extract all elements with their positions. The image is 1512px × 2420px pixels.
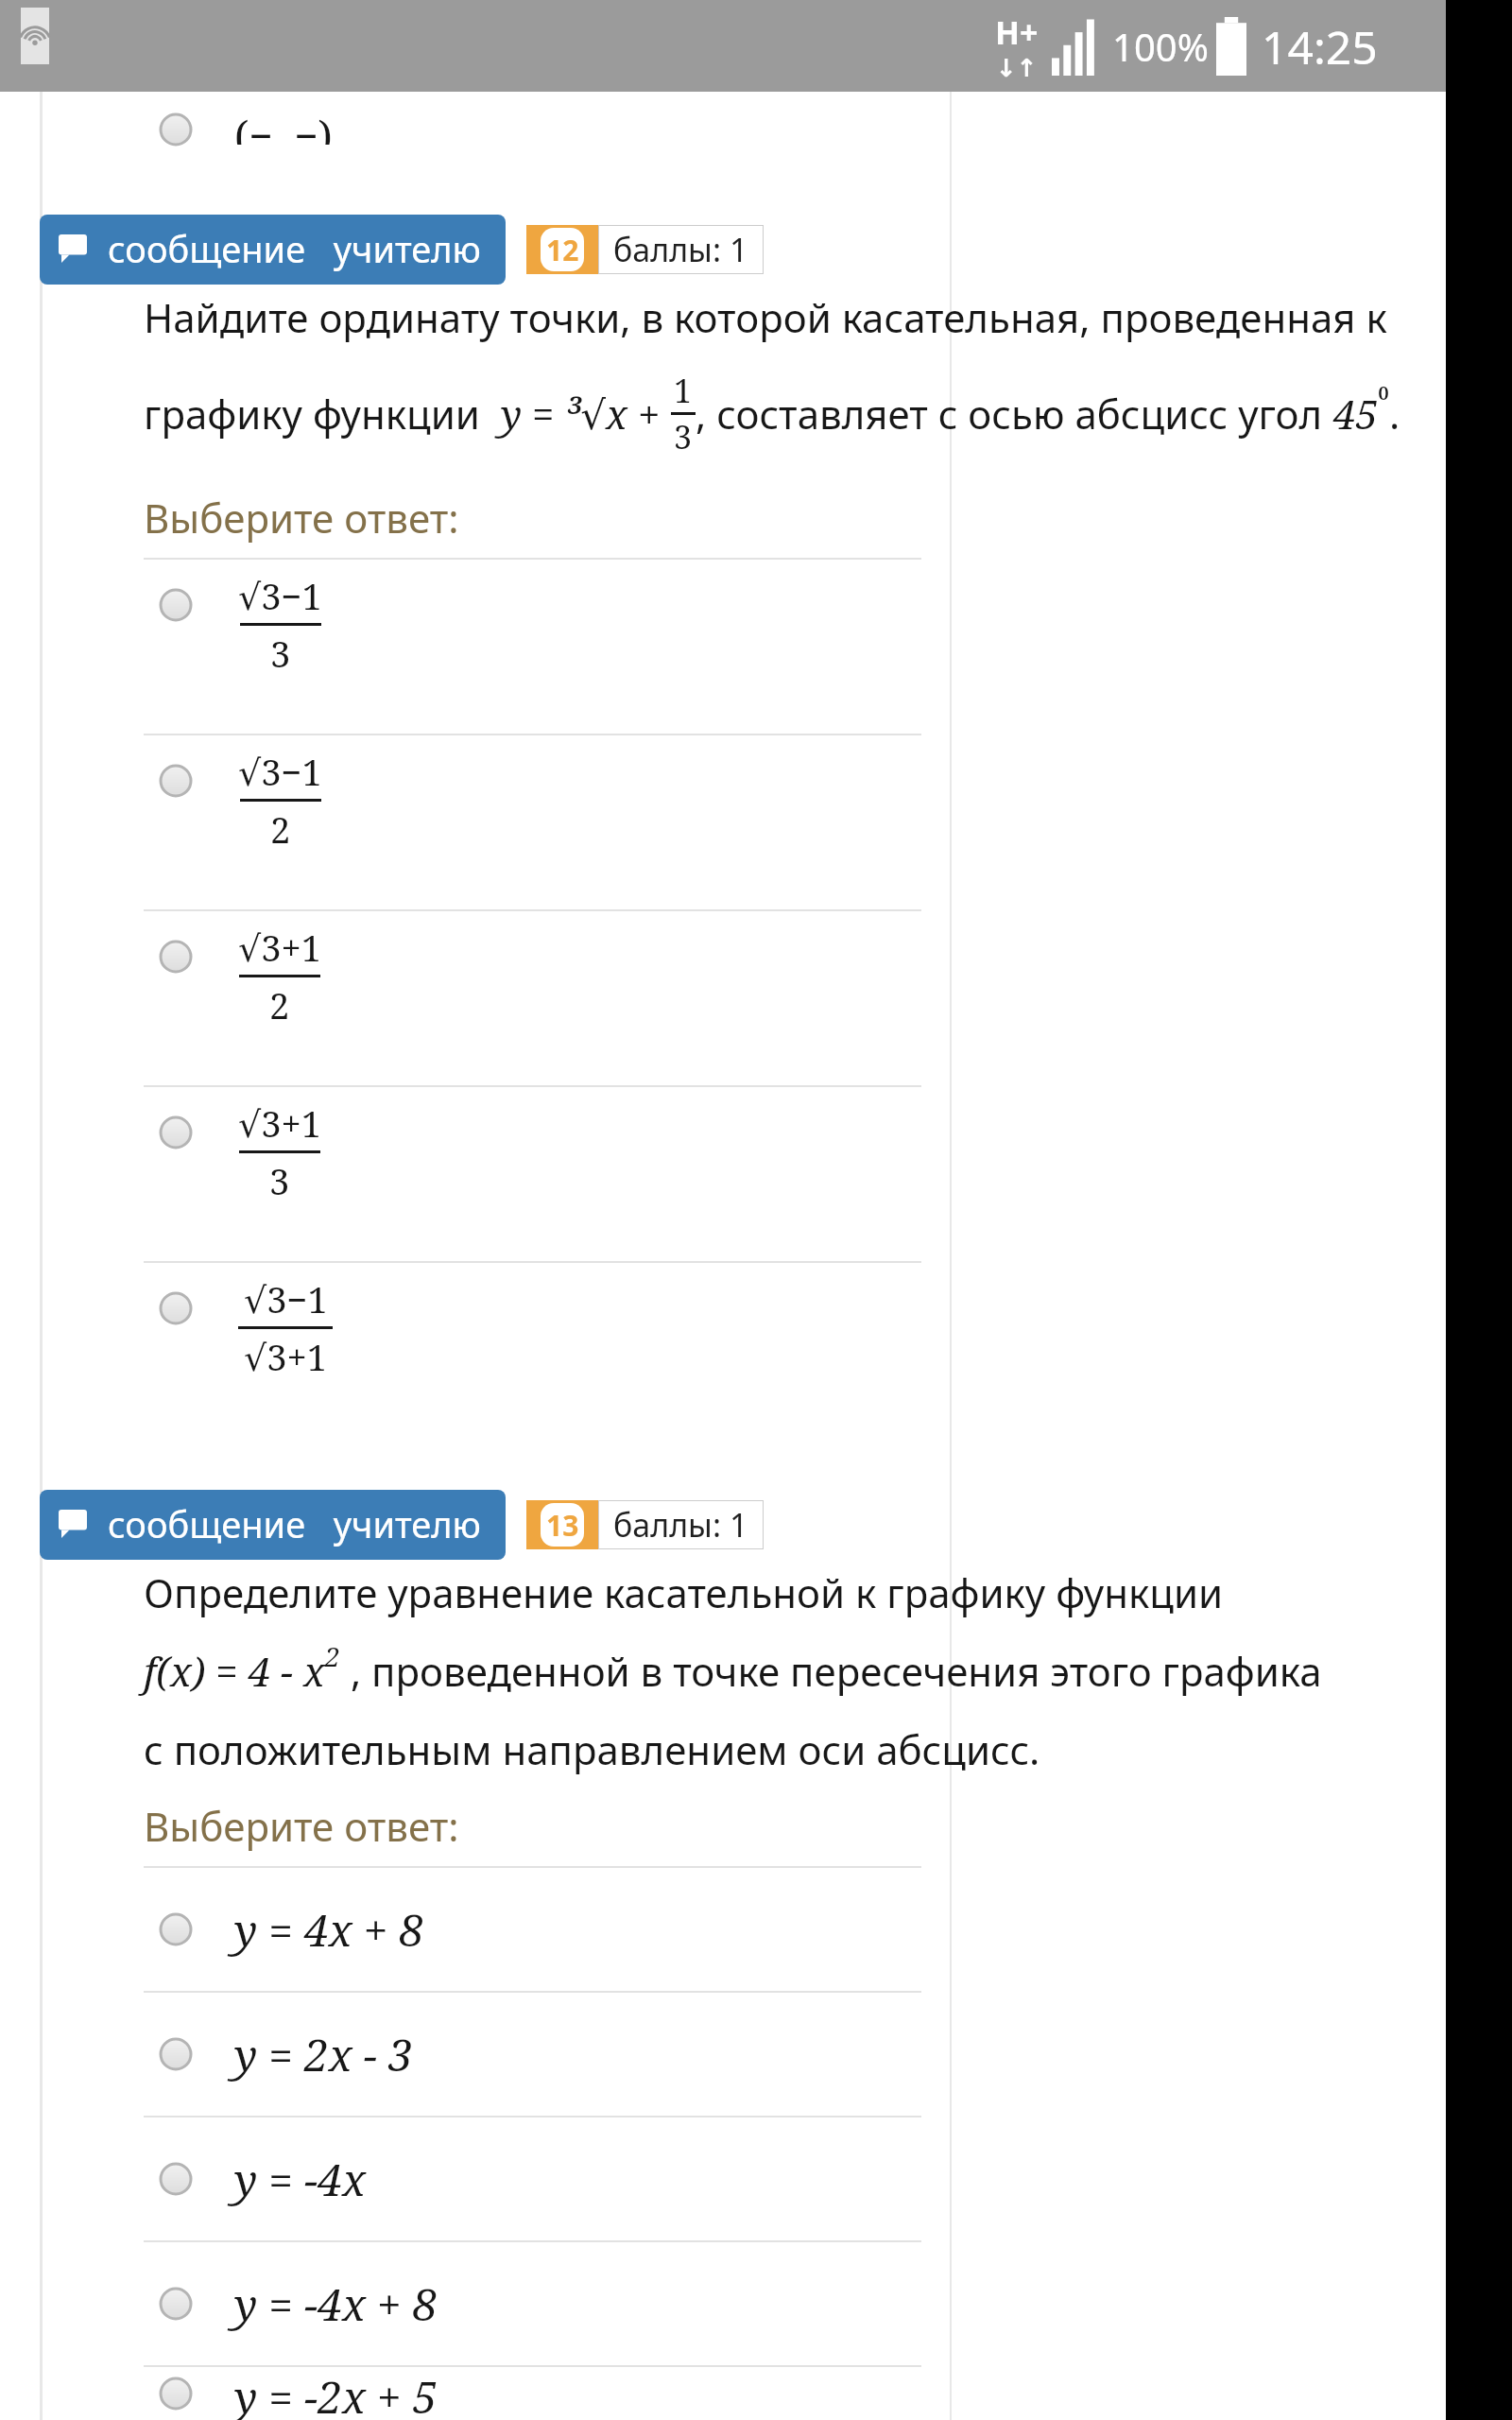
staticText: графику функции — [144, 387, 501, 441]
staticText: f(x) = 4 - x — [144, 1644, 325, 1698]
button[interactable]: √3−1 — [0, 1263, 1446, 1437]
staticText: y = 2x − 3 — [234, 2025, 413, 2084]
button[interactable]: y = 4x + 8 — [0, 1868, 1446, 1991]
staticText: y = ³√x + — [501, 387, 671, 441]
staticText: √3−1 — [238, 571, 322, 620]
staticText: √3+1 — [244, 1332, 327, 1381]
staticText: y = −4x + 8 — [234, 2274, 438, 2334]
button[interactable]: 13 — [526, 1500, 764, 1549]
button[interactable]: √3+1 — [0, 1087, 1446, 1261]
staticText: 1 — [674, 369, 693, 412]
staticText: 13 — [546, 1506, 579, 1545]
staticText: √3+1 — [238, 923, 321, 972]
button[interactable]: √3+1 — [0, 911, 1446, 1085]
staticText: y = −4x — [234, 2150, 367, 2209]
button[interactable]: y = −2x + 5 — [0, 2367, 1446, 2420]
staticText: 14:25 — [1262, 16, 1378, 78]
staticText: сообщение учителю — [108, 1499, 481, 1548]
staticText: баллы: 1 — [613, 228, 748, 271]
staticText: (−, −) — [234, 107, 333, 145]
staticText: √3−1 — [244, 1274, 328, 1323]
button[interactable]: сообщение учителю — [40, 1490, 506, 1560]
staticText: , проведенной в точке пересечения этого … — [340, 1644, 1322, 1698]
staticText: y = 4x + 8 — [234, 1900, 424, 1960]
staticText: 2 — [269, 980, 290, 1029]
staticText: . — [1389, 387, 1400, 441]
staticText: y = −2x + 5 — [234, 2367, 438, 2420]
staticText: ⁰ — [1378, 381, 1389, 420]
staticText: 3 — [674, 415, 693, 458]
button[interactable]: 12 — [526, 225, 764, 274]
staticText: с положительным направлением оси абсцисс… — [144, 1722, 1040, 1776]
button[interactable]: y = 2x − 3 — [0, 1993, 1446, 2116]
button[interactable]: √3−1 — [0, 735, 1446, 909]
staticText: , составляет с осью абсцисс угол — [696, 387, 1333, 441]
staticText: Выберите ответ: — [144, 491, 459, 544]
staticText: 45 — [1333, 387, 1378, 441]
button[interactable]: y = −4x + 8 — [0, 2242, 1446, 2365]
staticText: ↓↑ — [996, 54, 1038, 82]
staticText: H+ — [995, 10, 1039, 54]
staticText: √3−1 — [238, 747, 322, 796]
staticText: Найдите ординату точки, в которой касате… — [144, 290, 1387, 344]
button[interactable]: (−, −) — [0, 92, 1446, 130]
staticText: Выберите ответ: — [144, 1799, 459, 1853]
staticText: 3 — [269, 1156, 290, 1205]
staticText: √3+1 — [238, 1098, 321, 1148]
staticText: 2 — [270, 804, 291, 854]
staticText: баллы: 1 — [613, 1503, 748, 1547]
staticText: 100% — [1112, 21, 1209, 72]
button[interactable]: √3−1 — [0, 560, 1446, 734]
staticText: сообщение учителю — [108, 224, 481, 273]
staticText: 2 — [325, 1638, 340, 1674]
staticText: 3 — [270, 629, 291, 678]
button[interactable]: y = −4x — [0, 2117, 1446, 2240]
staticText: Определите уравнение касательной к графи… — [144, 1565, 1224, 1619]
button[interactable]: сообщение учителю — [40, 215, 506, 285]
staticText: 12 — [546, 231, 579, 269]
